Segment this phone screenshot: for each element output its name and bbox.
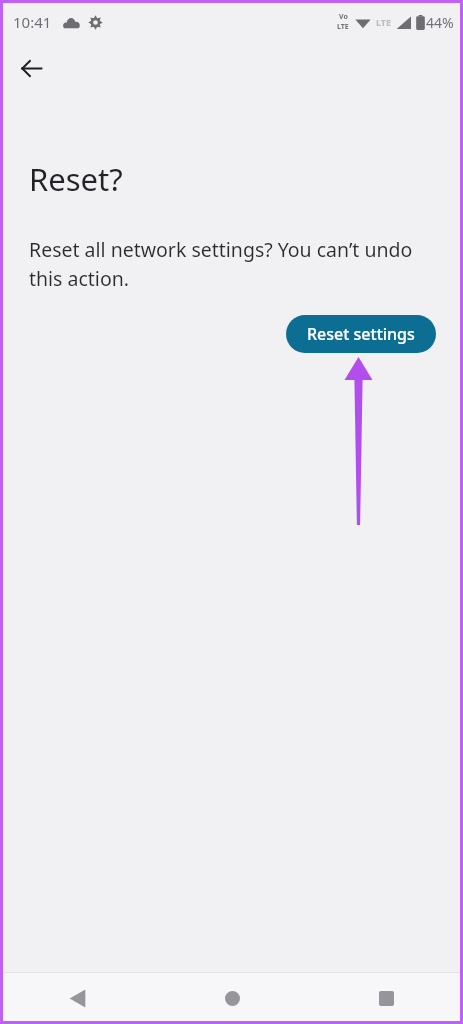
staticText: LTE xyxy=(376,16,392,28)
staticText: Reset all network settings? You can’t un… xyxy=(29,236,443,291)
staticText: LTE xyxy=(337,22,349,32)
staticText: Reset? xyxy=(29,158,123,200)
button[interactable]: Home xyxy=(155,973,309,1024)
staticText: 10:41 xyxy=(13,12,52,32)
button[interactable]: Back xyxy=(0,973,155,1024)
button[interactable]: Back xyxy=(11,48,51,88)
staticText: 44% xyxy=(426,13,454,32)
staticText: Vo xyxy=(339,12,348,22)
button[interactable]: Reset settings xyxy=(286,315,436,353)
button[interactable]: Recent apps xyxy=(309,973,463,1024)
staticText: Reset settings xyxy=(307,323,415,345)
